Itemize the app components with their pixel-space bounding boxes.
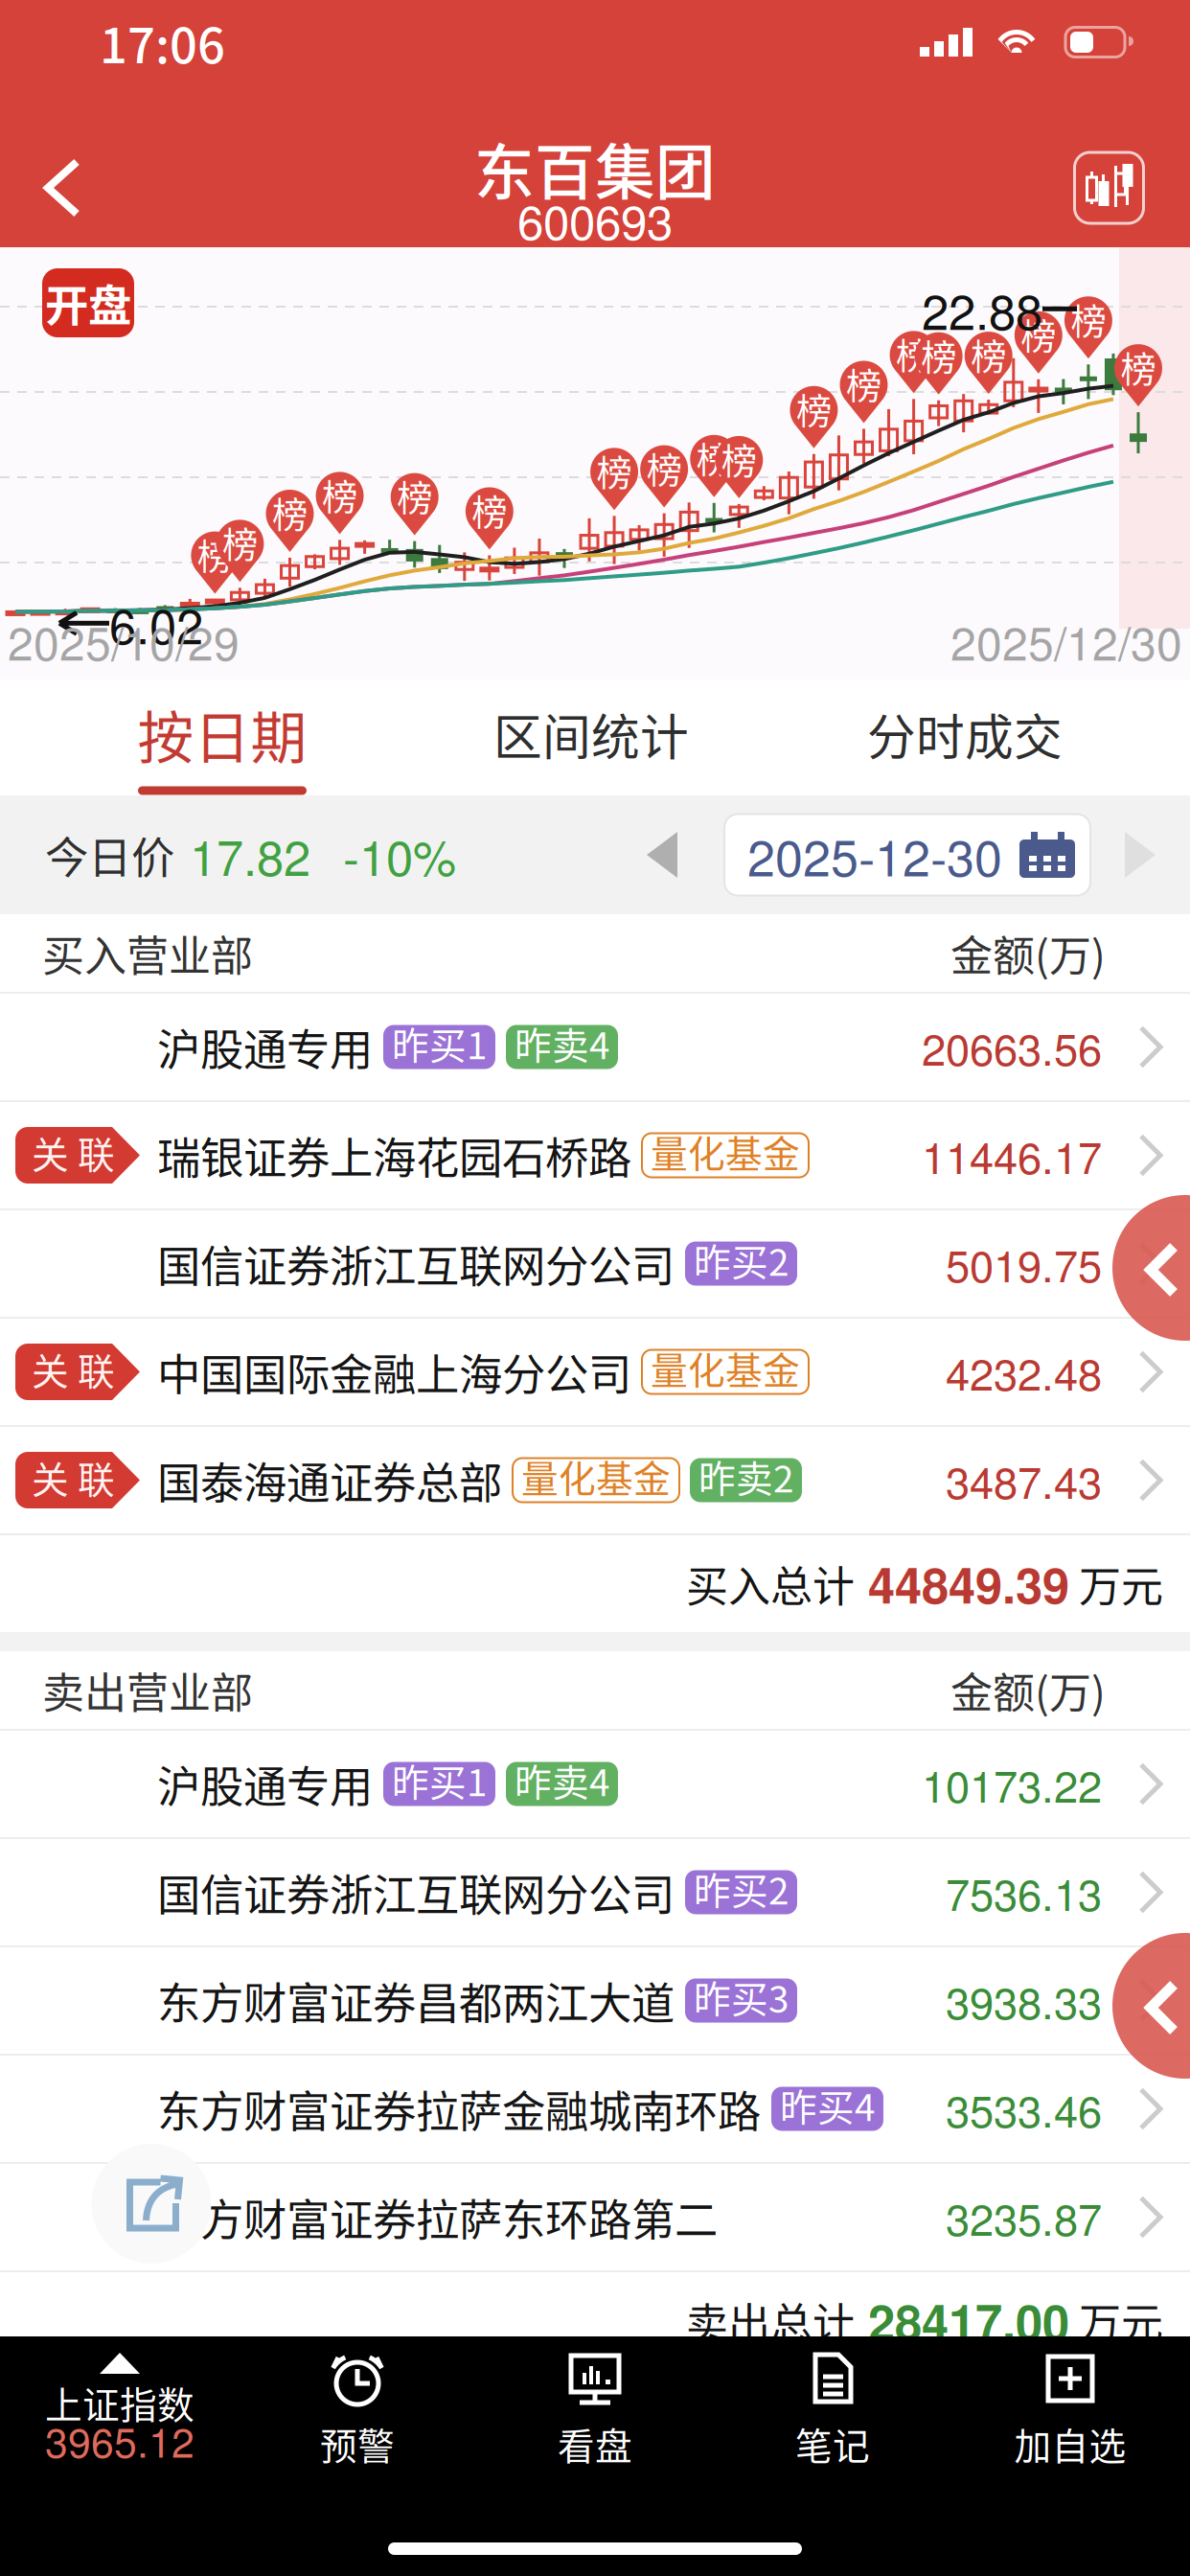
button[interactable]: Collapse panel bbox=[1112, 1933, 1190, 2079]
staticText: 关 联 bbox=[32, 1342, 115, 1396]
staticText: 2025/10/29 bbox=[8, 608, 240, 674]
staticText: 17.82 bbox=[190, 820, 310, 890]
staticText: 4232.48 bbox=[946, 1341, 1102, 1403]
staticText: 国泰海通证券总部 bbox=[157, 1449, 502, 1512]
button[interactable]: Collapse panel bbox=[1112, 1195, 1190, 1341]
staticText: 昨买2 bbox=[694, 1862, 789, 1915]
button[interactable]: 沪股通专用 bbox=[0, 994, 1190, 1100]
staticText: 万元 bbox=[1079, 2290, 1163, 2351]
staticText: 买入总计 bbox=[686, 1553, 855, 1614]
button[interactable]: 关 联 bbox=[0, 1427, 1190, 1533]
staticText: 17:06 bbox=[100, 7, 225, 77]
staticText: 东百集团 bbox=[474, 124, 716, 211]
staticText: 国信证券浙江互联网分公司 bbox=[157, 1861, 675, 1924]
staticText: 昨买1 bbox=[392, 1016, 487, 1070]
staticText: 3938.33 bbox=[946, 1969, 1102, 2032]
staticText: 榜 bbox=[272, 487, 308, 539]
staticText: 7536.13 bbox=[946, 1861, 1102, 1923]
staticText: 昨卖4 bbox=[515, 1753, 609, 1807]
staticText: 金额(万) bbox=[950, 1659, 1106, 1720]
staticText: 榜 bbox=[1071, 293, 1106, 345]
staticText: 榜 bbox=[796, 383, 832, 435]
button[interactable]: 预警 bbox=[239, 2336, 476, 2576]
staticText: 榜 bbox=[721, 433, 757, 485]
staticText: 榜 bbox=[696, 432, 732, 484]
staticText: 榜 bbox=[597, 445, 632, 497]
button[interactable]: 区间统计 bbox=[404, 679, 778, 795]
staticText: 加自选 bbox=[1014, 2417, 1126, 2471]
staticText: 国信证券浙江互联网分公司 bbox=[157, 1232, 675, 1295]
staticText: 44849.39 bbox=[868, 1549, 1069, 1618]
staticText: 600693 bbox=[517, 186, 673, 253]
staticText: 昨卖2 bbox=[698, 1449, 793, 1503]
staticText: 今日价 bbox=[45, 823, 174, 886]
button[interactable]: 关 联 bbox=[0, 1319, 1190, 1425]
staticText: 看盘 bbox=[558, 2417, 632, 2471]
staticText: 22.88 bbox=[922, 274, 1042, 344]
staticText: 榜 bbox=[646, 442, 682, 494]
staticText: 卖出总计 bbox=[686, 2290, 855, 2351]
staticText: 榜 bbox=[1121, 341, 1156, 393]
staticText: 榜 bbox=[322, 469, 357, 521]
staticText: 东方财富证券昌都两江大道 bbox=[157, 1969, 675, 2032]
staticText: 量化基金 bbox=[521, 1449, 671, 1503]
button[interactable]: 国信证券浙江互联网分公司 bbox=[0, 1210, 1190, 1317]
staticText: 万元 bbox=[1079, 1553, 1163, 1614]
staticText: 榜 bbox=[1021, 308, 1056, 360]
staticText: 2025-12-30 bbox=[747, 819, 1002, 891]
staticText: 卖出营业部 bbox=[42, 1659, 253, 1720]
staticText: 5019.75 bbox=[946, 1232, 1102, 1295]
staticText: 3533.46 bbox=[946, 2078, 1102, 2140]
staticText: 买入营业部 bbox=[42, 922, 253, 984]
staticText: 2025/12/30 bbox=[950, 608, 1182, 674]
staticText: 昨买3 bbox=[694, 1970, 789, 2024]
staticText: 预警 bbox=[320, 2417, 395, 2471]
button[interactable]: 加自选 bbox=[951, 2336, 1189, 2576]
button[interactable]: 2025-12-30 bbox=[724, 814, 1090, 896]
staticText: 量化基金 bbox=[651, 1125, 800, 1178]
staticText: 瑞银证券上海花园石桥路 bbox=[157, 1124, 631, 1187]
staticText: 昨买2 bbox=[694, 1233, 789, 1287]
button[interactable]: 关 联 bbox=[0, 1102, 1190, 1208]
button[interactable]: 按日期 bbox=[40, 679, 404, 795]
button[interactable]: 分时成交 bbox=[778, 679, 1152, 795]
staticText: 开盘 bbox=[45, 271, 131, 334]
button[interactable]: 东方财富证券拉萨金融城南环路 bbox=[0, 2056, 1190, 2162]
button[interactable]: Back bbox=[0, 147, 125, 229]
button[interactable]: Next day bbox=[1090, 795, 1190, 914]
button[interactable]: 看盘 bbox=[476, 2336, 714, 2576]
staticText: 3965.12 bbox=[45, 2411, 195, 2469]
staticText: 榜 bbox=[921, 329, 956, 381]
staticText: 榜 bbox=[397, 470, 432, 522]
staticText: 关 联 bbox=[32, 1450, 115, 1504]
staticText: 量化基金 bbox=[651, 1341, 800, 1395]
staticText: 区间统计 bbox=[493, 699, 689, 769]
button[interactable]: 东方财富证券拉萨东环路第二 bbox=[0, 2164, 1190, 2270]
button[interactable]: K-line chart bbox=[1028, 147, 1190, 229]
staticText: 10173.22 bbox=[922, 1753, 1102, 1815]
button[interactable]: Shanghai Composite Index 3965.12 bbox=[1, 2336, 239, 2576]
button[interactable]: 国信证券浙江互联网分公司 bbox=[0, 1839, 1190, 1945]
staticText: 20663.56 bbox=[922, 1016, 1102, 1078]
staticText: 榜 bbox=[472, 484, 507, 536]
staticText: 榜 bbox=[896, 328, 931, 380]
staticText: 中国国际金融上海分公司 bbox=[157, 1340, 631, 1403]
staticText: 6.02 bbox=[109, 588, 203, 658]
staticText: 笔记 bbox=[795, 2417, 870, 2471]
staticText: 3487.43 bbox=[946, 1449, 1102, 1511]
button[interactable]: 沪股通专用 bbox=[0, 1731, 1190, 1837]
staticText: 榜 bbox=[197, 529, 233, 580]
staticText: 榜 bbox=[846, 358, 881, 410]
staticText: 沪股通专用 bbox=[157, 1753, 373, 1815]
staticText: 3235.87 bbox=[946, 2186, 1102, 2248]
staticText: 分时成交 bbox=[867, 699, 1063, 769]
staticText: 上证指数 bbox=[45, 2376, 195, 2429]
button[interactable]: Share bbox=[92, 2144, 211, 2264]
button[interactable]: Previous day bbox=[600, 795, 724, 914]
button[interactable]: 笔记 bbox=[714, 2336, 951, 2576]
staticText: 榜 bbox=[222, 517, 258, 569]
button[interactable]: 东方财富证券昌都两江大道 bbox=[0, 1947, 1190, 2054]
staticText: 昨卖4 bbox=[515, 1016, 609, 1070]
staticText: 东方财富证券拉萨东环路第二 bbox=[157, 2186, 718, 2249]
staticText: 金额(万) bbox=[950, 922, 1106, 984]
